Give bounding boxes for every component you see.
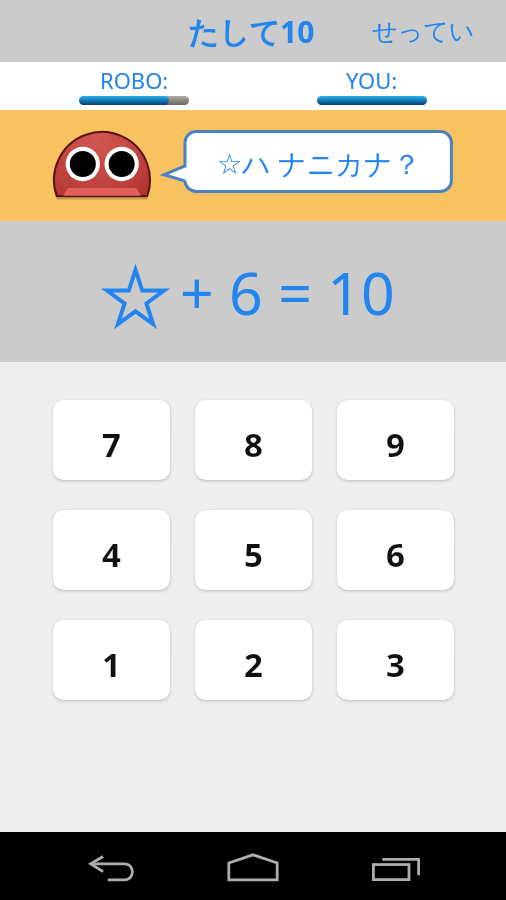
button[interactable]: 8 [195,400,312,480]
button[interactable]: 1 [53,620,170,700]
button[interactable]: せってい [368,8,479,55]
staticText: + 6 = 10 [180,252,395,332]
staticText: 8 [244,422,263,467]
staticText: 6 [386,532,405,577]
staticText: 1 [102,642,121,687]
button[interactable]: 4 [53,510,170,590]
staticText: 4 [102,532,121,577]
button[interactable]: Home [216,837,289,897]
button[interactable]: Recent apps [359,839,432,899]
button[interactable]: 7 [53,400,170,480]
staticText: 2 [244,642,263,687]
staticText: ROBO: [100,65,169,95]
staticText: せってい [372,16,475,47]
staticText: ☆ハ ナニカナ？ [217,144,421,182]
button[interactable]: Back [76,839,149,899]
button[interactable]: 6 [337,510,454,590]
staticText: 9 [386,422,405,467]
staticText: 5 [244,532,263,577]
button[interactable]: 2 [195,620,312,700]
button[interactable]: 9 [337,400,454,480]
button[interactable]: 5 [195,510,312,590]
staticText: たして10 [188,11,315,52]
staticText: 7 [102,422,121,467]
staticText: 3 [386,642,405,687]
button[interactable]: 3 [337,620,454,700]
staticText: YOU: [346,65,398,95]
